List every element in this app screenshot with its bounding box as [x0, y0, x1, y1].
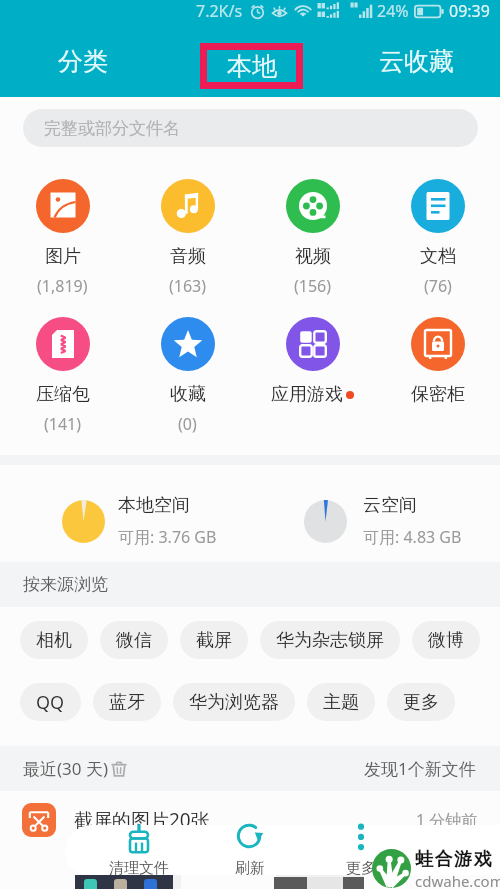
staticText: 清理文件 — [109, 859, 169, 875]
staticText: cdwahe.com — [415, 871, 500, 889]
staticText: 蛙合游戏 — [415, 848, 494, 871]
button[interactable]: Clear recent files — [110, 760, 128, 778]
staticText: 文档 — [420, 245, 456, 268]
button[interactable]: 保密柜 — [375, 317, 500, 447]
staticText: 微信 — [116, 629, 152, 652]
staticText: QQ — [36, 690, 65, 715]
button[interactable]: 截屏的图片20张 — [0, 791, 500, 849]
staticText: 视频 — [295, 245, 331, 268]
button[interactable]: 视频 — [250, 179, 375, 309]
staticText: 本地 — [227, 51, 277, 82]
staticText: 主题 — [323, 691, 359, 714]
staticText: (156) — [294, 275, 332, 297]
button[interactable]: 华为杂志锁屏 — [260, 621, 400, 659]
staticText: 24% — [377, 0, 409, 22]
button[interactable]: 相机 — [20, 621, 88, 659]
staticText: 7.2K/s — [196, 0, 243, 22]
staticText: 更多 — [403, 691, 439, 714]
staticText: 刷新 — [235, 859, 265, 875]
button[interactable]: 微博 — [412, 621, 480, 659]
staticText: (0) — [178, 413, 197, 435]
staticText: 收藏 — [170, 383, 206, 406]
button[interactable]: 应用游戏 — [250, 317, 375, 447]
staticText: 云收藏 — [379, 46, 454, 77]
button[interactable]: 蓝牙 — [93, 683, 161, 721]
staticText: 微博 — [428, 629, 464, 652]
staticText: 可用: 3.76 GB — [118, 526, 217, 548]
staticText: 截屏 — [196, 629, 232, 652]
staticText: 09:39 — [449, 0, 490, 22]
staticText: (141) — [44, 413, 82, 435]
button[interactable]: 主题 — [307, 683, 375, 721]
staticText: 本地空间 — [118, 494, 190, 517]
staticText: 保密柜 — [411, 383, 465, 406]
button[interactable]: QQ — [20, 683, 81, 721]
staticText: (163) — [169, 275, 207, 297]
staticText: 最近(30 天) — [23, 757, 109, 780]
button[interactable]: 刷新 — [195, 824, 305, 875]
staticText: 华为杂志锁屏 — [276, 629, 384, 652]
button[interactable]: 图片 — [0, 179, 125, 309]
button[interactable]: 截屏 — [180, 621, 248, 659]
staticText: 蓝牙 — [109, 691, 145, 714]
button[interactable]: 云收藏 — [333, 26, 500, 97]
button[interactable]: 云空间 — [304, 491, 478, 551]
staticText: 按来源浏览 — [23, 574, 108, 595]
button[interactable]: 本地 — [166, 26, 333, 97]
button[interactable]: 压缩包 — [0, 317, 125, 447]
staticText: 音频 — [170, 245, 206, 268]
button[interactable]: 华为浏览器 — [173, 683, 295, 721]
staticText: 1 分钟前 — [416, 809, 478, 831]
button[interactable]: 微信 — [100, 621, 168, 659]
button[interactable]: 文档 — [375, 179, 500, 309]
staticText: 相机 — [36, 629, 72, 652]
staticText: 本地 — [225, 46, 275, 77]
staticText: 完整或部分文件名 — [44, 118, 180, 139]
staticText: 分类 — [58, 46, 108, 77]
button[interactable]: 分类 — [0, 26, 166, 97]
staticText: 图片 — [45, 245, 81, 268]
staticText: (76) — [424, 275, 452, 297]
button[interactable]: 收藏 — [125, 317, 250, 447]
button[interactable]: 更多 — [306, 824, 416, 875]
staticText: 应用游戏 — [271, 383, 343, 406]
button[interactable]: 完整或部分文件名 — [23, 109, 478, 147]
staticText: 截屏的图片20张 — [74, 807, 210, 833]
staticText: 华为浏览器 — [189, 691, 279, 714]
button[interactable]: 更多 — [387, 683, 455, 721]
staticText: 云空间 — [363, 494, 417, 517]
staticText: (1,819) — [37, 275, 88, 297]
button[interactable]: 音频 — [125, 179, 250, 309]
button[interactable]: 清理文件 — [84, 824, 194, 875]
staticText: 可用: 4.83 GB — [363, 526, 462, 548]
staticText: 压缩包 — [36, 383, 90, 406]
staticText: 更多 — [346, 859, 376, 875]
button[interactable]: 本地空间 — [62, 491, 478, 551]
staticText: 发现1个新文件 — [364, 757, 476, 780]
